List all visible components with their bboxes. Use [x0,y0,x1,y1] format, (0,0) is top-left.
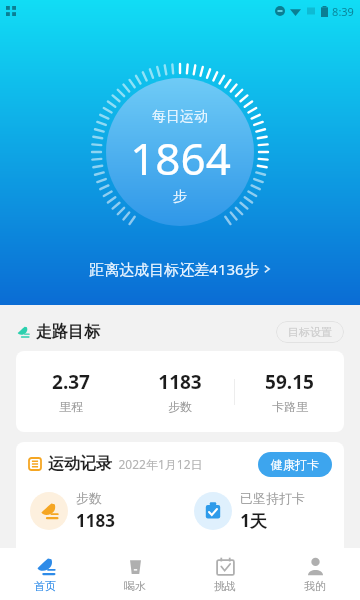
staticText: 运动记录 [48,454,112,474]
button[interactable]: 喝水 [90,548,180,600]
staticText: 步数 [168,399,192,414]
staticText: 我的 [304,579,326,593]
staticText: 首页 [34,579,56,593]
button[interactable]: 首页 [0,548,90,600]
staticText: 里程 [59,399,83,414]
button[interactable]: 健康打卡 [258,452,332,477]
staticText: 卡路里 [272,399,308,414]
staticText: 59.15 [265,369,314,395]
staticText: 喝水 [124,579,146,593]
staticText: 2022年1月12日 [118,456,203,472]
staticText: 1864 [130,128,231,188]
button[interactable]: 挑战 [180,548,270,600]
staticText: 8:39 [332,4,354,19]
staticText: 1183 [158,369,202,395]
staticText: 步数 [76,490,102,506]
staticText: 走路目标 [36,322,100,342]
staticText: 已坚持打卡 [240,490,305,506]
staticText: 挑战 [214,579,236,593]
staticText: 1天 [240,509,267,532]
staticText: 健康打卡 [271,457,319,472]
staticText: 每日运动 [152,108,208,126]
staticText: 1183 [76,509,115,532]
button[interactable]: 距离达成目标还差4136步 [79,255,282,283]
button[interactable]: 目标设置 [276,321,344,343]
staticText: 2.37 [52,369,90,395]
button[interactable]: 我的 [270,548,360,600]
staticText: 目标设置 [288,325,332,339]
staticText: 距离达成目标还差4136步 [89,259,259,279]
staticText: 步 [173,188,187,206]
button[interactable]: 2.37 [16,351,344,432]
